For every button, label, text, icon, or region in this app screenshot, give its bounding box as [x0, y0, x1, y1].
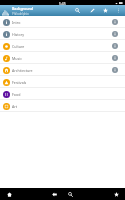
staticText: Food	[12, 92, 21, 97]
staticText: Art	[12, 104, 18, 109]
button[interactable]: Intro	[0, 16, 125, 28]
button[interactable]: Search	[72, 5, 83, 16]
staticText: Intro	[12, 20, 21, 25]
button[interactable]: Search	[64, 188, 76, 200]
staticText: Festivals	[12, 80, 27, 85]
button[interactable]: Edit	[87, 5, 98, 16]
button[interactable]: Art	[0, 100, 125, 112]
button[interactable]: Favorite	[100, 5, 111, 16]
button[interactable]: Favorites	[110, 188, 122, 200]
staticText: Music	[12, 56, 22, 61]
button[interactable]: Culture	[0, 40, 125, 52]
staticText: History	[12, 32, 25, 37]
button[interactable]: Back	[48, 188, 60, 200]
button[interactable]: Festivals	[0, 76, 125, 88]
staticText: Philadelphia	[12, 12, 29, 16]
button[interactable]: Music	[0, 52, 125, 64]
staticText: Culture	[12, 44, 25, 49]
button[interactable]: More options	[113, 5, 124, 16]
staticText: 5:45	[59, 1, 66, 5]
button[interactable]: Home	[3, 188, 15, 200]
button[interactable]: App logo	[0, 5, 11, 16]
button[interactable]: Food	[0, 88, 125, 100]
button[interactable]: Architecture	[0, 64, 125, 76]
staticText: Background	[12, 6, 34, 11]
staticText: Architecture	[12, 68, 33, 73]
button[interactable]: History	[0, 28, 125, 40]
